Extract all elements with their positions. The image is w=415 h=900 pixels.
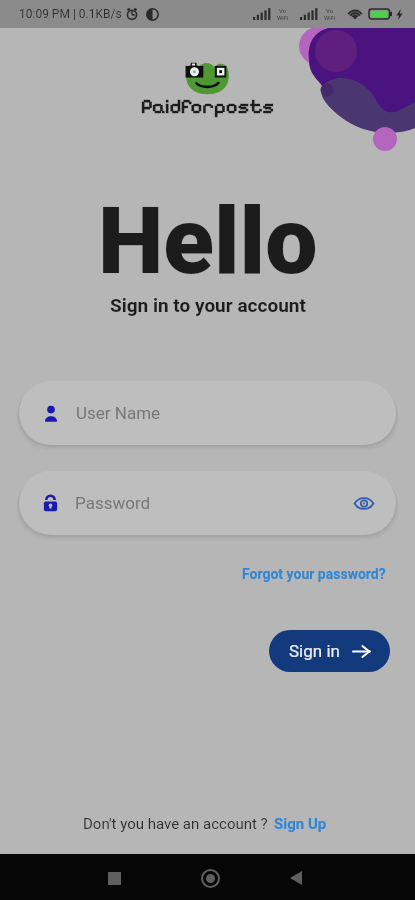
button[interactable]: Home	[190, 858, 230, 898]
staticText: Hello	[98, 187, 318, 296]
staticText: WiFi	[324, 14, 336, 21]
staticText: 10:09 PM | 0.1KB/s	[19, 7, 122, 21]
staticText: Paidforposts	[141, 95, 274, 119]
button[interactable]: Sign in	[269, 630, 390, 672]
staticText: Vo	[326, 7, 334, 14]
button[interactable]: Recents	[94, 858, 134, 898]
staticText: Password	[75, 493, 151, 513]
button[interactable]: User Name	[19, 381, 396, 445]
staticText: User Name	[76, 403, 161, 423]
button[interactable]: Forgot your password?	[213, 562, 415, 586]
button[interactable]: Password	[19, 471, 396, 535]
staticText: Sign Up	[274, 815, 327, 833]
staticText: Don't you have an account ?	[83, 815, 268, 833]
button[interactable]: Sign Up	[268, 811, 333, 837]
staticText: Forgot your password?	[242, 566, 386, 582]
staticText: Sign in	[289, 641, 340, 661]
staticText: Sign in to your account	[110, 294, 306, 316]
button[interactable]: Back	[276, 858, 316, 898]
button[interactable]: Show password	[344, 486, 384, 521]
staticText: WiFi	[277, 14, 289, 21]
staticText: Vo	[279, 7, 287, 14]
